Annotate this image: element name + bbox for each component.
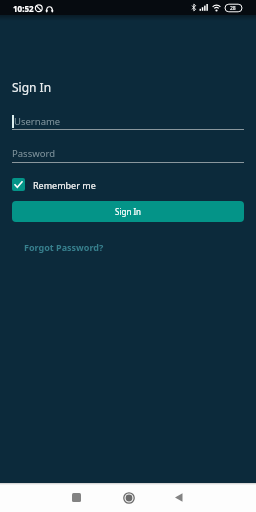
- staticText: Remember me: [33, 179, 96, 191]
- staticText: 28: [230, 5, 236, 12]
- button[interactable]: [62, 483, 91, 512]
- button[interactable]: Remember me: [12, 176, 96, 191]
- button[interactable]: [114, 483, 143, 512]
- button[interactable]: Forgot Password?: [24, 241, 104, 253]
- staticText: Sign In: [115, 206, 142, 217]
- staticText: 10:52: [13, 3, 34, 14]
- staticText: Forgot Password?: [24, 241, 104, 253]
- staticText: Sign In: [12, 79, 52, 95]
- staticText: Username: [14, 115, 61, 128]
- button[interactable]: Sign In: [12, 201, 244, 222]
- staticText: Password: [12, 147, 55, 160]
- button[interactable]: [164, 483, 193, 512]
